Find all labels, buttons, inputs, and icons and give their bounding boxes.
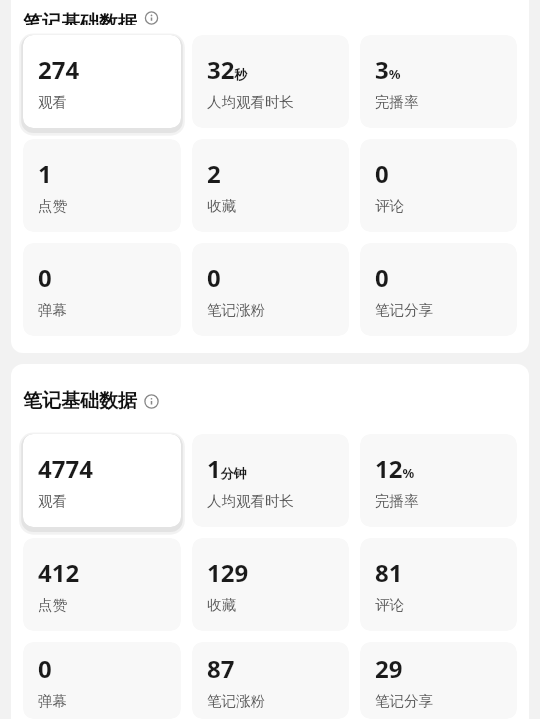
staticText: 0 bbox=[38, 652, 52, 685]
staticText: 87 bbox=[207, 652, 235, 685]
staticText: 人均观看时长 bbox=[207, 93, 294, 111]
button[interactable]: 87 bbox=[192, 642, 349, 719]
staticText: 弹幕 bbox=[38, 692, 67, 710]
button[interactable]: 129 bbox=[192, 538, 349, 631]
button[interactable]: Info about 笔记基础数据 bbox=[144, 11, 159, 25]
staticText: 32秒 bbox=[207, 53, 248, 86]
button[interactable]: Info about 笔记基础数据 bbox=[144, 394, 159, 409]
button[interactable]: 1 bbox=[23, 139, 181, 232]
staticText: 笔记分享 bbox=[375, 692, 433, 710]
button[interactable]: 0 bbox=[23, 243, 181, 336]
button[interactable]: 0 bbox=[360, 243, 517, 336]
staticText: 观看 bbox=[38, 492, 67, 510]
staticText: 完播率 bbox=[375, 93, 419, 111]
button[interactable]: 32秒 bbox=[192, 35, 349, 128]
staticText: 274 bbox=[38, 53, 80, 86]
staticText: 1分钟 bbox=[207, 452, 247, 485]
staticText: 评论 bbox=[375, 596, 404, 614]
staticText: 完播率 bbox=[375, 492, 419, 510]
staticText: 笔记涨粉 bbox=[207, 692, 265, 710]
staticText: 评论 bbox=[375, 197, 404, 215]
staticText: 笔记基础数据 bbox=[23, 11, 137, 25]
button[interactable]: 0 bbox=[23, 642, 181, 719]
staticText: 人均观看时长 bbox=[207, 492, 294, 510]
button[interactable]: 4774 bbox=[23, 434, 181, 527]
button[interactable]: 0 bbox=[360, 139, 517, 232]
staticText: 412 bbox=[38, 556, 80, 589]
staticText: 笔记涨粉 bbox=[207, 301, 265, 319]
staticText: 笔记基础数据 bbox=[23, 389, 137, 413]
button[interactable]: 0 bbox=[192, 243, 349, 336]
staticText: 1 bbox=[38, 157, 52, 190]
staticText: 129 bbox=[207, 556, 249, 589]
staticText: 81 bbox=[375, 556, 403, 589]
staticText: 0 bbox=[38, 261, 52, 294]
button[interactable]: 12% bbox=[360, 434, 517, 527]
staticText: 12% bbox=[375, 452, 415, 485]
button[interactable]: 2 bbox=[192, 139, 349, 232]
staticText: 0 bbox=[375, 261, 389, 294]
button[interactable]: 笔记基础数据 bbox=[23, 387, 517, 415]
staticText: 4774 bbox=[38, 452, 93, 485]
staticText: 收藏 bbox=[207, 197, 236, 215]
staticText: 3% bbox=[375, 53, 401, 86]
button[interactable]: 3% bbox=[360, 35, 517, 128]
button[interactable]: 274 bbox=[23, 35, 181, 128]
button[interactable]: 81 bbox=[360, 538, 517, 631]
staticText: 点赞 bbox=[38, 197, 67, 215]
button[interactable]: 29 bbox=[360, 642, 517, 719]
staticText: 0 bbox=[207, 261, 221, 294]
staticText: 弹幕 bbox=[38, 301, 67, 319]
button[interactable]: 1分钟 bbox=[192, 434, 349, 527]
button[interactable]: 笔记基础数据 bbox=[23, 9, 517, 27]
staticText: 笔记分享 bbox=[375, 301, 433, 319]
staticText: 2 bbox=[207, 157, 221, 190]
staticText: 收藏 bbox=[207, 596, 236, 614]
button[interactable]: 412 bbox=[23, 538, 181, 631]
staticText: 观看 bbox=[38, 93, 67, 111]
staticText: 29 bbox=[375, 652, 403, 685]
staticText: 点赞 bbox=[38, 596, 67, 614]
staticText: 0 bbox=[375, 157, 389, 190]
